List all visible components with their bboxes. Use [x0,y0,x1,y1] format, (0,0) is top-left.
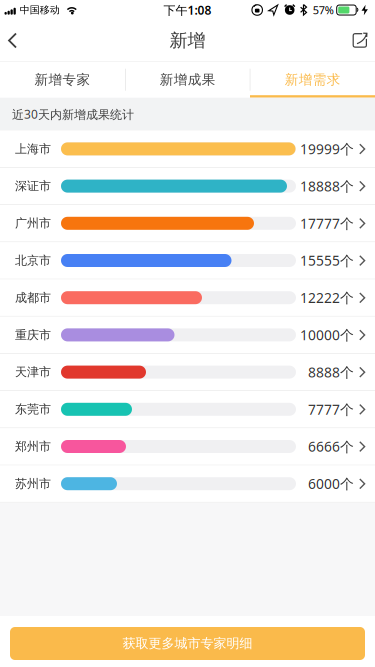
staticText: 近30天内新增成果统计 [12,106,134,122]
staticText: 天津市 [15,364,51,380]
staticText: 新增专家 [34,71,90,88]
button[interactable]: 成都市 [0,279,375,317]
button[interactable]: 北京市 [0,242,375,279]
button[interactable]: 获取更多城市专家明细 [10,627,365,660]
staticText: 上海市 [15,141,51,156]
staticText: 苏州市 [15,476,51,491]
staticText: 6000个 [308,474,354,493]
staticText: 获取更多城市专家明细 [122,635,252,652]
button[interactable]: 新增成果 [126,62,250,97]
staticText: 下午1:08 [163,2,211,18]
staticText: 57% [313,2,334,17]
staticText: 重庆市 [15,327,51,342]
button[interactable]: 新增需求 [250,62,375,97]
button[interactable]: 上海市 [0,131,375,168]
staticText: 新增 [169,29,205,52]
staticText: 10000个 [300,325,354,344]
staticText: 广州市 [15,216,51,231]
staticText: 中国移动 [20,4,60,16]
button[interactable]: 东莞市 [0,391,375,428]
staticText: 7777个 [308,400,354,419]
staticText: 东莞市 [15,402,51,417]
button[interactable]: 郑州市 [0,428,375,465]
button[interactable]: Back [0,20,31,61]
staticText: 18888个 [300,177,354,195]
staticText: 深证市 [15,178,51,194]
button[interactable]: 天津市 [0,354,375,391]
staticText: 17777个 [300,214,354,233]
staticText: 郑州市 [15,439,51,454]
staticText: 12222个 [300,288,354,307]
button[interactable]: 苏州市 [0,465,375,503]
button[interactable]: 新增专家 [0,62,125,97]
staticText: 新增成果 [160,71,216,88]
staticText: 19999个 [300,139,354,158]
staticText: 成都市 [15,290,51,305]
button[interactable]: 重庆市 [0,317,375,354]
button[interactable]: 深证市 [0,168,375,205]
staticText: 8888个 [308,363,354,381]
staticText: 北京市 [15,253,51,268]
staticText: 新增需求 [285,71,341,88]
staticText: 15555个 [300,251,354,270]
button[interactable]: Share [340,20,375,61]
staticText: 6666个 [308,437,354,456]
button[interactable]: 广州市 [0,205,375,242]
